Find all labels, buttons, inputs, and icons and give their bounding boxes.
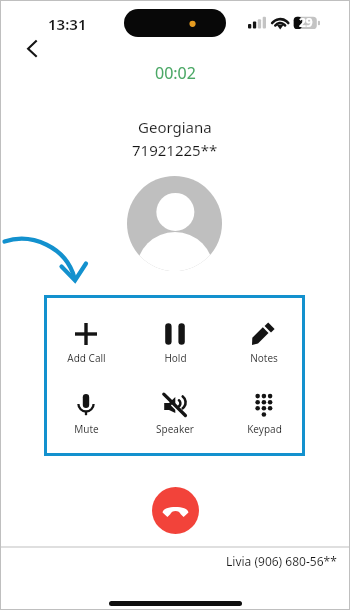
button[interactable]: Keypad [221, 380, 307, 440]
staticText: Mute [74, 422, 99, 436]
button[interactable]: Hold [132, 309, 218, 369]
staticText: Hold [164, 351, 187, 365]
staticText: 13:31 [48, 14, 87, 34]
staticText: Add Call [67, 351, 106, 365]
staticText: Speaker [156, 422, 194, 436]
staticText: Keypad [247, 422, 282, 436]
button[interactable]: Back [18, 36, 44, 62]
staticText: Livia (906) 680-56** [226, 553, 337, 569]
staticText: 29 [299, 14, 313, 30]
staticText: 71921225** [132, 140, 218, 160]
button[interactable]: Add Call [43, 309, 129, 369]
staticText: Notes [250, 351, 278, 365]
button[interactable]: Speaker [132, 380, 218, 440]
staticText: Georgiana [138, 117, 212, 137]
button[interactable]: Notes [221, 309, 307, 369]
button[interactable]: Mute [43, 380, 129, 440]
staticText: 00:02 [155, 62, 196, 84]
button[interactable]: End call [152, 487, 199, 534]
